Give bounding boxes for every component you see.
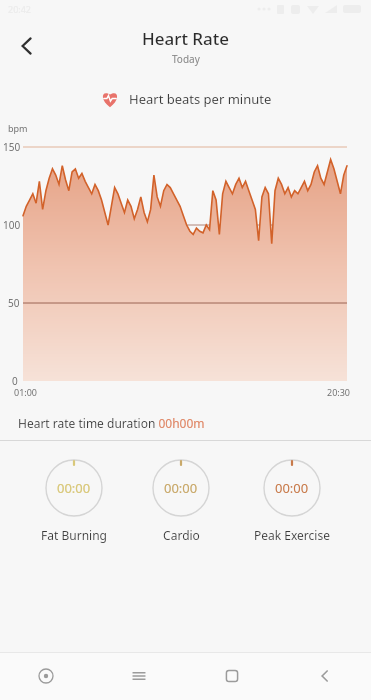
button[interactable]: Menu: [111, 652, 167, 700]
staticText: Today: [172, 52, 200, 66]
staticText: 00:00: [275, 479, 309, 497]
staticText: bpm: [8, 122, 28, 134]
button[interactable]: Back: [4, 23, 50, 69]
staticText: 100: [3, 218, 21, 232]
staticText: Heart rate time duration 00h00m: [18, 415, 205, 431]
staticText: 20:30: [327, 386, 351, 398]
button[interactable]: 00:00: [37, 459, 111, 543]
staticText: 150: [3, 140, 21, 154]
staticText: 20:42: [8, 3, 32, 15]
staticText: 00:00: [57, 479, 91, 497]
button[interactable]: Assistant: [18, 652, 74, 700]
staticText: 50: [8, 296, 20, 310]
button[interactable]: 00:00: [250, 459, 334, 543]
staticText: 0: [12, 374, 18, 388]
button[interactable]: Heart rate time duration 00h00m: [0, 406, 371, 440]
staticText: Peak Exercise: [254, 527, 330, 543]
staticText: 01:00: [14, 386, 38, 398]
staticText: 00:00: [164, 479, 198, 497]
staticText: Heart beats per minute: [129, 90, 272, 108]
staticText: Fat Burning: [41, 527, 107, 543]
button[interactable]: 00:00: [148, 459, 214, 543]
button[interactable]: Back: [297, 652, 353, 700]
staticText: Heart Rate: [142, 27, 230, 50]
button[interactable]: Home: [204, 652, 260, 700]
staticText: Cardio: [163, 527, 200, 543]
